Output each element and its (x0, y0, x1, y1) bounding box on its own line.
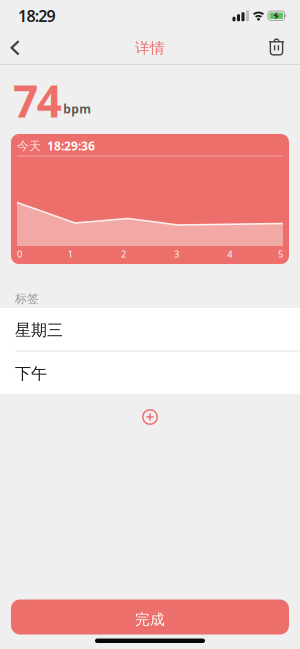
staticText: 2 (121, 248, 126, 260)
staticText: 18:29:36 (47, 138, 95, 154)
staticText: 下午 (15, 364, 47, 384)
button[interactable]: 下午 (0, 351, 300, 394)
staticText: 74 (13, 71, 62, 130)
staticText: bpm (63, 101, 91, 117)
button[interactable]: 星期三 (0, 308, 300, 350)
staticText: 0 (17, 248, 22, 260)
button[interactable] (268, 33, 300, 63)
button[interactable] (0, 33, 20, 62)
staticText: 今天 (17, 139, 41, 153)
staticText: 详情 (135, 39, 165, 57)
staticText: 3 (174, 248, 179, 260)
staticText: 标签 (15, 291, 39, 306)
staticText: 1 (68, 248, 73, 260)
button[interactable] (142, 409, 158, 425)
button[interactable]: 完成 (11, 599, 289, 634)
staticText: 18:29 (18, 5, 56, 26)
staticText: 4 (227, 248, 232, 260)
staticText: 星期三 (15, 320, 63, 340)
staticText: 5 (278, 248, 283, 260)
staticText: 完成 (135, 610, 165, 628)
